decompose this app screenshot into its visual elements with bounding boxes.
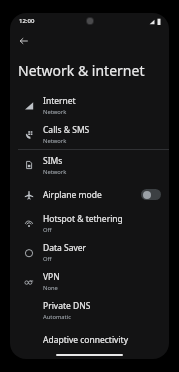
staticText: SIMs bbox=[43, 155, 63, 167]
staticText: Internet bbox=[43, 95, 76, 107]
staticText: Network bbox=[43, 108, 67, 116]
staticText: Private DNS bbox=[43, 300, 91, 312]
staticText: 12:00 bbox=[19, 17, 35, 25]
staticText: Network & internet bbox=[18, 61, 145, 80]
staticText: VPN bbox=[43, 271, 60, 283]
staticText: Hotspot & tethering bbox=[43, 213, 123, 225]
staticText: Network bbox=[43, 137, 67, 145]
button[interactable]: Calls & SMS bbox=[10, 120, 169, 149]
staticText: Network bbox=[43, 168, 67, 176]
staticText: Off bbox=[43, 226, 52, 234]
button[interactable]: Private DNS bbox=[10, 296, 169, 325]
staticText: Data Saver bbox=[43, 242, 87, 254]
button[interactable]: Airplane mode toggle bbox=[141, 189, 161, 200]
button[interactable]: Adaptive connectivity bbox=[10, 325, 169, 354]
staticText: Automatic bbox=[43, 313, 71, 321]
button[interactable]: Hotspot & tethering bbox=[10, 209, 169, 238]
button[interactable]: SIMs bbox=[10, 150, 169, 180]
button[interactable]: Internet bbox=[10, 91, 169, 120]
staticText: None bbox=[43, 284, 58, 292]
button[interactable]: VPN bbox=[10, 267, 169, 296]
button[interactable]: Data Saver bbox=[10, 238, 169, 267]
staticText: Calls & SMS bbox=[43, 124, 90, 136]
button[interactable]: Back bbox=[16, 33, 32, 49]
staticText: Airplane mode bbox=[43, 189, 102, 201]
button[interactable]: Airplane mode bbox=[10, 180, 169, 209]
staticText: Off bbox=[43, 255, 52, 263]
staticText: Adaptive connectivity bbox=[43, 334, 129, 346]
